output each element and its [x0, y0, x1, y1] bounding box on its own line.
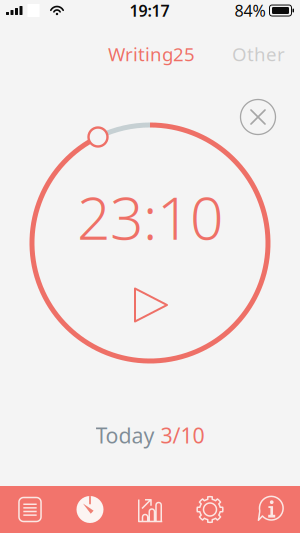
button[interactable]: Other: [232, 39, 285, 69]
staticText: 84%: [234, 0, 265, 21]
staticText: Writing25: [108, 42, 195, 66]
button[interactable]: Timer: [60, 486, 120, 533]
button[interactable]: Writing25: [108, 39, 195, 69]
button[interactable]: Notes: [0, 486, 60, 533]
button[interactable]: Close: [236, 95, 280, 139]
button[interactable]: Info: [240, 486, 300, 533]
staticText: 3/10: [160, 421, 204, 449]
button[interactable]: Settings: [180, 486, 240, 533]
staticText: 23:10: [77, 178, 223, 256]
staticText: Today: [95, 421, 154, 449]
staticText: Other: [232, 42, 285, 66]
staticText: 19:17: [129, 0, 169, 21]
button[interactable]: Statistics: [120, 486, 180, 533]
button[interactable]: Start timer: [124, 278, 178, 332]
